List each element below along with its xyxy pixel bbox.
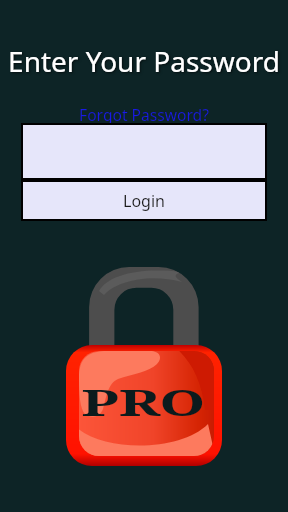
staticText: Forgot Password? [79,104,209,125]
staticText: Enter Your Password [0,42,288,80]
staticText: PRO [81,378,207,426]
button[interactable]: Login [23,182,265,219]
button[interactable]: Forgot Password? [0,103,288,125]
staticText: Login [123,190,165,212]
